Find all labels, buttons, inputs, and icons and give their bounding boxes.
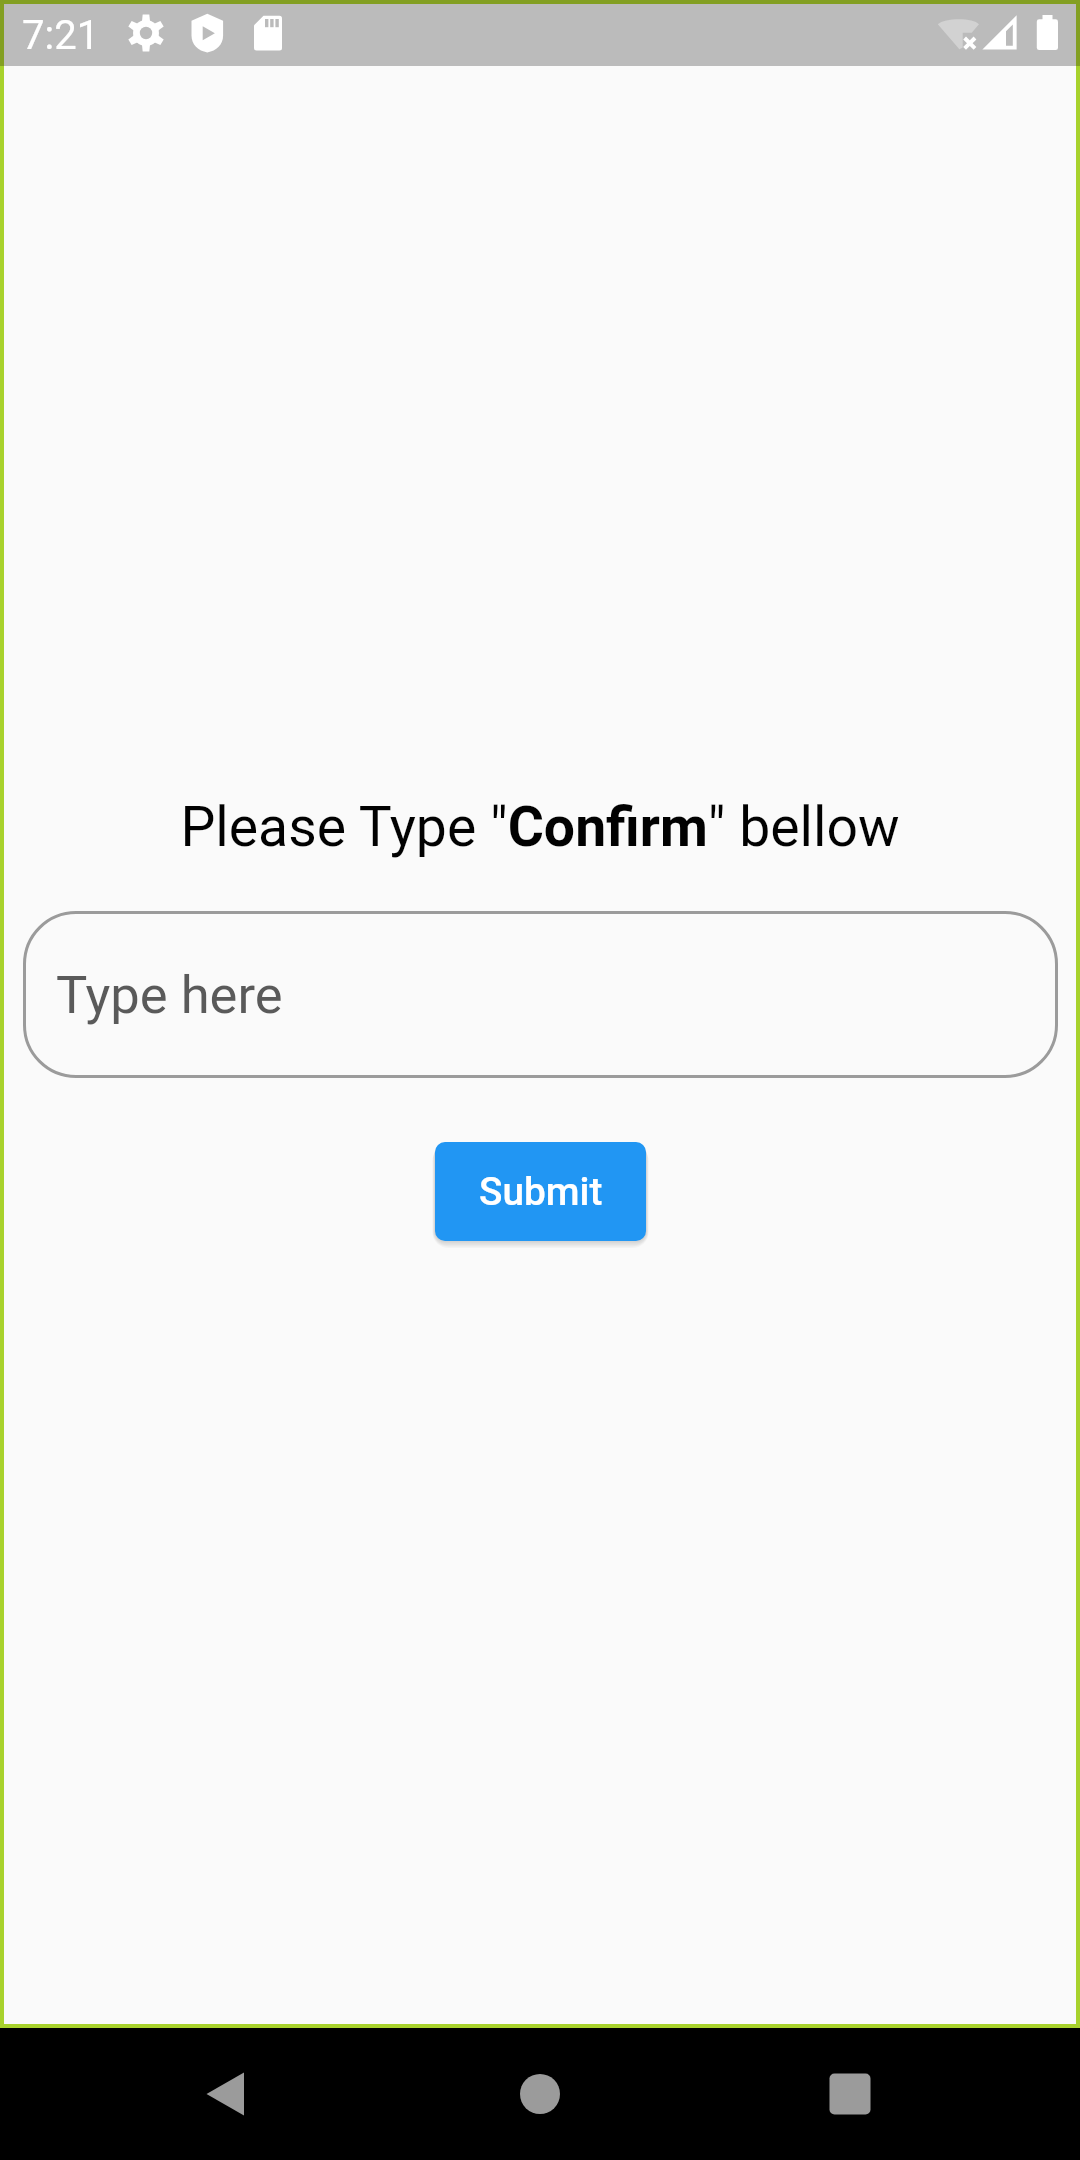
button[interactable]: Type here <box>23 911 1058 1078</box>
staticText: Please Type "Confirm" bellow <box>4 795 1076 860</box>
button[interactable]: Back <box>159 2028 291 2160</box>
staticText: Type here <box>56 964 283 1026</box>
staticText: 7:21 <box>22 12 100 59</box>
button[interactable]: Recent apps <box>784 2028 916 2160</box>
button[interactable]: Submit <box>435 1142 646 1241</box>
staticText: Submit <box>479 1169 603 1214</box>
button[interactable]: Home <box>474 2028 606 2160</box>
